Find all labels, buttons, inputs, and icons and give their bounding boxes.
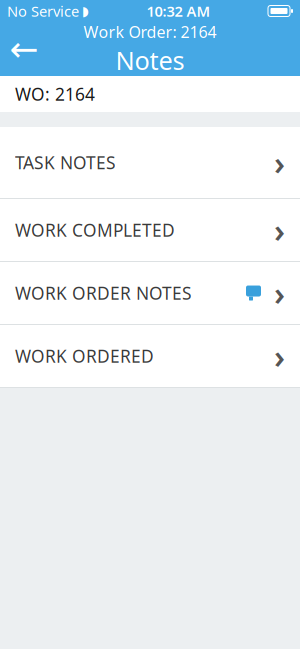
button[interactable]: Back <box>0 22 48 76</box>
button[interactable]: WORK ORDERED <box>0 325 300 387</box>
staticText: WORK ORDERED <box>15 344 154 367</box>
staticText: Notes <box>115 43 184 77</box>
staticText: › <box>274 209 285 251</box>
staticText: ◗ <box>82 3 89 18</box>
staticText: No Service <box>7 1 79 21</box>
staticText: Work Order: 2164 <box>83 21 216 42</box>
staticText: TASK NOTES <box>15 151 116 174</box>
button[interactable]: WORK ORDER NOTES <box>0 262 300 324</box>
staticText: WORK ORDER NOTES <box>15 281 192 304</box>
staticText: › <box>274 272 285 314</box>
staticText: ← <box>9 29 38 69</box>
staticText: › <box>274 141 285 184</box>
button[interactable]: TASK NOTES <box>0 127 300 198</box>
staticText: 10:32 AM <box>146 1 210 21</box>
staticText: › <box>274 335 285 377</box>
staticText: WORK COMPLETED <box>15 218 175 241</box>
button[interactable]: WORK COMPLETED <box>0 199 300 261</box>
staticText: WO: 2164 <box>15 82 95 105</box>
